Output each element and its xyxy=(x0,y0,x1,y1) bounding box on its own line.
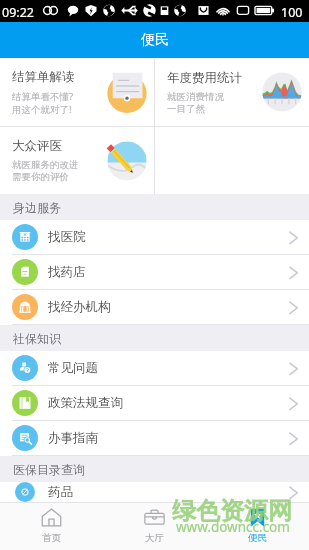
staticText: 医保目录查询 xyxy=(13,462,85,477)
staticText: 找药店 xyxy=(48,264,86,280)
staticText: 大厅 xyxy=(145,532,164,544)
staticText: 年度费用统计 xyxy=(167,70,242,86)
button[interactable]: 便民 xyxy=(206,503,309,550)
button[interactable]: 首页 xyxy=(0,503,103,550)
staticText: 结算单解读 xyxy=(12,69,75,85)
staticText: www.downcc.com xyxy=(176,518,290,536)
button[interactable]: 年度费用统计 xyxy=(155,58,309,126)
staticText: 大众评医 xyxy=(12,138,62,154)
staticText: 身边服务 xyxy=(13,200,61,215)
button[interactable]: 结算单解读 xyxy=(0,58,154,126)
staticText: 100 xyxy=(281,4,303,21)
staticText: 用这个就对了! xyxy=(12,103,72,116)
staticText: 办事指南 xyxy=(48,430,98,446)
button[interactable]: 药品 xyxy=(0,482,309,502)
button[interactable]: 办事指南 xyxy=(0,421,309,455)
button[interactable]: 找药店 xyxy=(0,255,309,289)
staticText: 便民 xyxy=(248,532,267,544)
button[interactable]: 大众评医 xyxy=(0,127,154,194)
staticText: 社保知识 xyxy=(13,331,61,346)
staticText: 找医院 xyxy=(48,229,86,245)
button[interactable]: 常见问题 xyxy=(0,351,309,385)
staticText: 常见问题 xyxy=(48,360,98,376)
staticText: 药品 xyxy=(48,484,73,500)
staticText: 09:22 xyxy=(2,4,34,21)
staticText: 绿色资源网 xyxy=(172,496,292,526)
staticText: 政策法规查询 xyxy=(48,395,123,411)
staticText: 就医服务的改进 xyxy=(12,159,79,171)
staticText: 首页 xyxy=(42,532,61,544)
staticText: 需要你的评价 xyxy=(12,171,69,183)
button[interactable]: 大厅 xyxy=(103,503,206,550)
button[interactable]: 找医院 xyxy=(0,220,309,254)
staticText: 一目了然 xyxy=(167,103,205,115)
staticText: 找经办机构 xyxy=(48,299,111,315)
button[interactable]: 政策法规查询 xyxy=(0,386,309,420)
staticText: 就医消费情况 xyxy=(167,91,224,103)
button[interactable]: 找经办机构 xyxy=(0,290,309,324)
staticText: 结算单看不懂? xyxy=(12,90,74,103)
staticText: 便民 xyxy=(141,31,169,49)
